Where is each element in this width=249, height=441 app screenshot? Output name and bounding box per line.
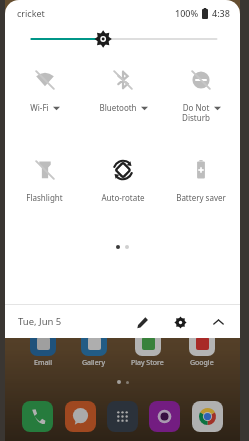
button[interactable]: Wi-Fi <box>5 61 84 139</box>
button[interactable]: Auto-rotate <box>84 151 162 229</box>
button[interactable]: App <box>192 401 223 432</box>
button[interactable]: App <box>22 401 53 432</box>
staticText: Tue, Jun 5 <box>18 315 62 328</box>
staticText: Auto-rotate <box>101 192 145 203</box>
button[interactable]: Brightness <box>5 26 240 52</box>
staticText: Do Not Disturb <box>182 102 210 123</box>
button[interactable]: App <box>149 401 180 432</box>
button[interactable]: Do Not Disturb <box>162 61 240 139</box>
staticText: Flashlight <box>26 192 63 203</box>
button[interactable]: App <box>107 401 138 432</box>
staticText: Play Store <box>131 358 164 368</box>
staticText: Gallery <box>82 358 106 368</box>
staticText: 4:38 <box>212 7 230 19</box>
button[interactable]: Settings <box>170 312 190 332</box>
staticText: Bluetooth <box>99 102 137 113</box>
button[interactable] <box>81 330 107 356</box>
staticText: Google <box>190 358 214 368</box>
button[interactable]: Bluetooth <box>84 61 162 139</box>
staticText: 100% <box>175 7 199 19</box>
staticText: Battery saver <box>176 192 226 203</box>
button[interactable] <box>30 330 56 356</box>
staticText: cricket <box>17 7 45 19</box>
staticText: Email <box>34 358 52 368</box>
button[interactable] <box>189 330 215 356</box>
button[interactable]: Battery saver <box>162 151 240 229</box>
staticText: Wi-Fi <box>30 102 49 113</box>
button[interactable]: App <box>65 401 96 432</box>
button[interactable]: Collapse <box>208 312 228 332</box>
button[interactable]: Edit <box>132 312 152 332</box>
button[interactable] <box>135 330 161 356</box>
button[interactable]: Flashlight <box>5 151 84 229</box>
